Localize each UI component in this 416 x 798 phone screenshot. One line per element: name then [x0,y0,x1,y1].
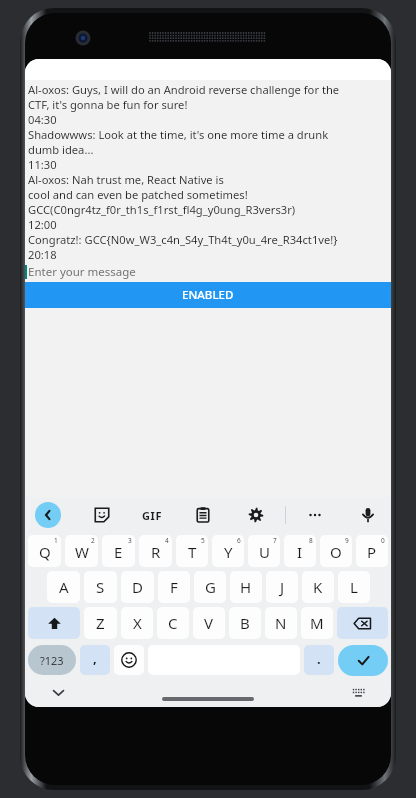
staticText: 6 [237,536,241,545]
button[interactable]: A [47,571,80,603]
staticText: W [75,542,89,562]
button[interactable]: Back [35,502,61,528]
button[interactable]: More options [302,502,328,528]
button[interactable]: GIF [142,508,163,523]
button[interactable]: Clipboard [190,502,216,528]
button[interactable]: M [301,607,333,639]
staticText: V [204,613,214,633]
button[interactable]: Shift [28,607,80,639]
staticText: Enter your message [28,264,136,280]
staticText: G [205,577,216,597]
staticText: ENABLED [182,287,234,303]
staticText: 9 [345,536,349,545]
staticText: 4 [165,536,169,545]
button[interactable]: Hide keyboard [47,681,69,703]
button[interactable]: S [84,571,117,603]
staticText: Shadowwws: Look at the time, it's one mo… [28,127,329,142]
staticText: 5 [201,536,205,545]
staticText: M [310,613,324,633]
staticText: N [275,613,287,633]
button[interactable]: . [304,645,334,675]
button[interactable]: R [139,535,172,567]
staticText: S [96,577,105,597]
staticText: O [330,542,342,562]
staticText: GIF [142,508,163,523]
button[interactable]: F [158,571,190,603]
button[interactable]: G [194,571,226,603]
staticText: L [350,577,358,597]
button[interactable]: P [356,535,388,567]
staticText: A [59,577,69,597]
button[interactable]: L [338,571,370,603]
button[interactable]: W [65,535,98,567]
button[interactable]: N [265,607,297,639]
staticText: 2 [91,536,95,545]
staticText: Al-oxos: Nah trust me, React Native is [28,172,224,187]
staticText: dumb idea... [28,142,94,157]
button[interactable]: Z [84,607,117,639]
staticText: F [170,577,178,597]
staticText: Y [224,542,233,562]
staticText: Congratz!: GCC{N0w_W3_c4n_S4y_Th4t_y0u_4… [28,232,338,247]
staticText: Z [96,613,105,633]
button[interactable]: I [284,535,316,567]
staticText: 20:18 [28,247,57,262]
staticText: 3 [128,536,132,545]
staticText: 1 [54,536,58,545]
button[interactable]: Q [28,535,61,567]
button[interactable]: Stickers [89,502,115,528]
staticText: P [367,542,377,562]
button[interactable]: X [121,607,153,639]
staticText: GCC(C0ngr4tz_f0r_th1s_f1rst_fl4g_y0ung_R… [28,202,296,217]
staticText: 12:00 [28,217,57,232]
staticText: C [168,613,178,633]
button[interactable]: , [80,645,110,675]
staticText: 7 [273,536,277,545]
button[interactable]: D [121,571,154,603]
staticText: T [188,542,197,562]
staticText: 04:30 [28,112,57,127]
button[interactable]: H [230,571,262,603]
staticText: J [280,577,285,597]
button[interactable]: U [248,535,280,567]
button[interactable]: Settings [243,502,269,528]
staticText: E [114,542,123,562]
button[interactable]: J [266,571,298,603]
staticText: Q [39,542,51,562]
button[interactable]: V [193,607,225,639]
staticText: R [151,542,161,562]
button[interactable]: Switch keyboard [347,681,369,703]
button[interactable]: K [302,571,334,603]
staticText: K [313,577,323,597]
staticText: cool and can even be patched sometimes! [28,187,248,202]
staticText: H [240,577,252,597]
staticText: . [317,650,321,668]
button[interactable]: ENABLED [25,282,391,308]
button[interactable]: O [320,535,352,567]
staticText: I [297,542,303,562]
button[interactable]: T [176,535,208,567]
staticText: X [133,613,142,633]
button[interactable]: Enter [338,645,388,676]
button[interactable]: ?123 [28,645,76,675]
staticText: Al-oxos: Guys, I will do an Android reve… [28,82,340,97]
staticText: 8 [309,536,313,545]
button[interactable]: E [102,535,135,567]
button[interactable]: Backspace [337,607,388,639]
staticText: D [132,577,143,597]
staticText: ?123 [40,653,64,668]
staticText: , [93,649,97,667]
staticText: U [259,542,270,562]
staticText: B [240,613,250,633]
staticText: 0 [381,536,385,545]
staticText: 11:30 [28,157,57,172]
button[interactable]: Voice input [355,502,381,528]
button[interactable]: C [157,607,189,639]
staticText: CTF, it's gonna be fun for sure! [28,97,188,112]
button[interactable]: B [229,607,261,639]
button[interactable]: Emoji [114,645,144,675]
button[interactable]: Y [212,535,244,567]
button[interactable]: Enter your message [25,262,391,282]
